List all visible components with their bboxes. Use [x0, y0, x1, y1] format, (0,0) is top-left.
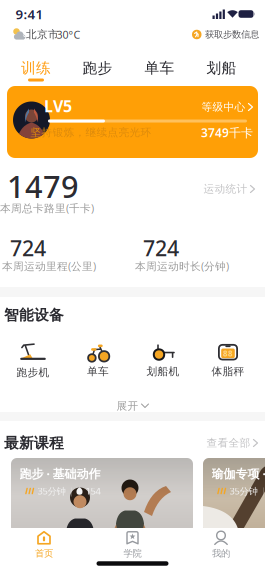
staticText: 首页 — [35, 548, 53, 559]
staticText: 154 — [85, 485, 100, 497]
staticText: 本周运动里程(公里) — [2, 259, 96, 273]
button[interactable]: 运动统计 — [203, 182, 254, 195]
staticText: 35分钟 — [229, 485, 257, 497]
button[interactable]: 划船机 — [146, 344, 179, 378]
button[interactable]: LV5 — [7, 86, 258, 158]
staticText: 724 — [10, 234, 46, 262]
staticText: 30°C — [56, 27, 80, 42]
staticText: 获取步数信息 — [205, 29, 259, 40]
button[interactable]: 首页 — [35, 531, 53, 559]
button[interactable]: 训练 — [21, 59, 51, 77]
button[interactable]: 跑步机 — [16, 343, 49, 379]
staticText: | — [68, 485, 73, 497]
staticText: 3749千卡 — [201, 124, 253, 140]
staticText: 训练 — [21, 59, 51, 77]
staticText: 88 — [223, 348, 233, 359]
staticText: 学院 — [123, 548, 141, 559]
staticText: 跑步机 — [16, 366, 49, 379]
button[interactable]: 88 — [211, 344, 244, 378]
staticText: 智能设备 — [4, 306, 64, 324]
staticText: 单车 — [144, 59, 174, 77]
staticText: 北京市 — [26, 28, 59, 41]
button[interactable]: 跑步 — [82, 59, 112, 77]
staticText: 划船机 — [146, 365, 179, 378]
staticText: 我的 — [212, 548, 230, 559]
staticText: 划船 — [206, 59, 236, 77]
staticText: 运动统计 — [203, 182, 247, 195]
staticText: 1479 — [7, 166, 79, 206]
staticText: | — [260, 485, 265, 497]
button[interactable]: 我的 — [212, 531, 230, 559]
button[interactable]: 瑜伽专项 · 冥想 — [203, 458, 265, 533]
staticText: 9:41 — [15, 5, 43, 23]
button[interactable]: 单车 — [86, 342, 109, 378]
staticText: 坚持锻炼，继续点亮光环 — [30, 126, 151, 139]
staticText: 跑步 — [82, 59, 112, 77]
button[interactable]: 单车 — [144, 59, 174, 77]
staticText: 等级中心 — [201, 100, 245, 113]
button[interactable]: 跑步 · 基础动作 — [11, 458, 193, 533]
button[interactable]: 获取步数信息 — [192, 29, 259, 40]
staticText: 最新课程 — [4, 434, 64, 452]
staticText: 本周总卡路里(千卡) — [0, 201, 94, 215]
staticText: LV5 — [44, 95, 72, 117]
button[interactable]: 学院 — [123, 531, 141, 559]
staticText: 单车 — [87, 365, 109, 378]
button[interactable]: 查看全部 — [206, 436, 257, 449]
button[interactable]: 展开 — [116, 399, 148, 412]
staticText: 瑜伽专项 · 冥想 — [211, 465, 265, 481]
staticText: 本周运动时长(分钟) — [135, 259, 229, 273]
staticText: 35分钟 — [37, 485, 65, 497]
staticText: 跑步 · 基础动作 — [19, 465, 100, 481]
staticText: 体脂秤 — [211, 365, 244, 378]
button[interactable]: 划船 — [206, 59, 236, 77]
staticText: 724 — [143, 234, 179, 262]
staticText: 查看全部 — [206, 436, 250, 449]
staticText: 展开 — [116, 399, 138, 412]
